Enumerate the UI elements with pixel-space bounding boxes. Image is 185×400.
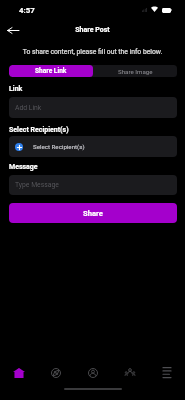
button[interactable]: Share Link bbox=[9, 65, 93, 77]
staticText: Type Message bbox=[15, 181, 59, 189]
staticText: Share Link bbox=[35, 67, 67, 75]
button[interactable]: Share Image bbox=[93, 65, 177, 77]
button[interactable]: Select Recipient(s) bbox=[9, 136, 177, 157]
button[interactable]: Home bbox=[0, 358, 37, 387]
button[interactable]: Type Message bbox=[9, 175, 177, 195]
staticText: Share Post bbox=[0, 26, 185, 34]
staticText: To share content, please fill out the in… bbox=[0, 48, 185, 56]
staticText: Add Link bbox=[15, 104, 42, 112]
button[interactable]: Groups bbox=[111, 358, 148, 387]
staticText: Share bbox=[83, 209, 103, 218]
button[interactable]: Profile bbox=[74, 358, 111, 387]
staticText: Select Recipient(s) bbox=[33, 143, 85, 150]
button[interactable]: Menu bbox=[148, 358, 185, 387]
staticText: Select Recipient(s) bbox=[9, 126, 69, 134]
button[interactable]: Add Link bbox=[9, 97, 177, 118]
staticText: Link bbox=[9, 85, 23, 93]
button[interactable]: Explore bbox=[37, 358, 74, 387]
staticText: Message bbox=[9, 163, 38, 171]
button[interactable]: Share bbox=[9, 203, 177, 223]
button[interactable]: Back bbox=[4, 21, 22, 39]
staticText: Share Image bbox=[118, 68, 153, 75]
staticText: 4:57 bbox=[19, 6, 35, 15]
